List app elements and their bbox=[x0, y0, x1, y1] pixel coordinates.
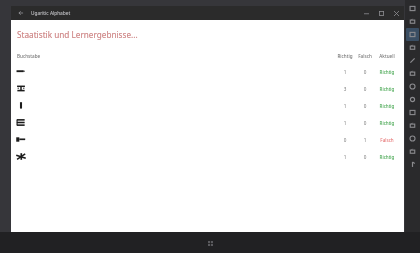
staticText: 0 bbox=[355, 69, 375, 75]
button[interactable]: 1 bbox=[11, 63, 404, 80]
button[interactable]: Tool 5 bbox=[406, 158, 419, 171]
button[interactable]: Close bbox=[389, 6, 404, 20]
staticText: Richtig bbox=[375, 86, 399, 92]
button[interactable]: Tool 0 bbox=[406, 28, 419, 41]
button[interactable]: Tool 1 bbox=[406, 132, 419, 145]
button[interactable]: Maximize bbox=[374, 6, 389, 20]
staticText: 0 bbox=[355, 154, 375, 160]
staticText: 1 bbox=[335, 154, 355, 160]
button[interactable]: 1 bbox=[11, 97, 404, 114]
staticText: Buchstabe bbox=[17, 53, 41, 59]
button[interactable]: Tool 2 bbox=[406, 54, 419, 67]
staticText: Richtig bbox=[375, 120, 399, 126]
button[interactable]: Tool 4 bbox=[406, 93, 419, 106]
staticText: 0 bbox=[355, 86, 375, 92]
button[interactable]: Tool 3 bbox=[406, 15, 419, 28]
staticText: Aktuell bbox=[375, 53, 399, 59]
staticText: Falsch bbox=[375, 137, 399, 143]
button[interactable]: 1 bbox=[11, 148, 404, 165]
button[interactable]: Tool 3 bbox=[406, 41, 419, 54]
button[interactable]: Tool 0 bbox=[406, 2, 419, 15]
button[interactable]: Tool 3 bbox=[406, 145, 419, 158]
staticText: 0 bbox=[355, 103, 375, 109]
staticText: 1 bbox=[335, 120, 355, 126]
staticText: Falsch bbox=[355, 53, 375, 59]
staticText: 1 bbox=[335, 103, 355, 109]
button[interactable]: 0 bbox=[11, 131, 404, 148]
button[interactable]: Tool 3 bbox=[406, 67, 419, 80]
button[interactable]: Taskbar app bbox=[206, 239, 214, 247]
staticText: 0 bbox=[335, 137, 355, 143]
staticText: 3 bbox=[335, 86, 355, 92]
button[interactable]: Tool 1 bbox=[406, 80, 419, 93]
button[interactable]: 3 bbox=[11, 80, 404, 97]
staticText: Richtig bbox=[375, 69, 399, 75]
staticText: 0 bbox=[355, 120, 375, 126]
staticText: Richtig bbox=[375, 103, 399, 109]
staticText: 1 bbox=[335, 69, 355, 75]
staticText: Richtig bbox=[375, 154, 399, 160]
staticText: 1 bbox=[355, 137, 375, 143]
button[interactable]: Tool 0 bbox=[406, 106, 419, 119]
staticText: Richtig bbox=[335, 53, 355, 59]
button[interactable]: Tool 3 bbox=[406, 119, 419, 132]
staticText: Staatistik und Lernergebnisse... bbox=[17, 29, 138, 40]
button[interactable]: 1 bbox=[11, 114, 404, 131]
staticText: Ugaritic Alphabet bbox=[31, 10, 71, 17]
button[interactable]: Back bbox=[11, 6, 31, 20]
button[interactable]: Minimize bbox=[359, 6, 374, 20]
